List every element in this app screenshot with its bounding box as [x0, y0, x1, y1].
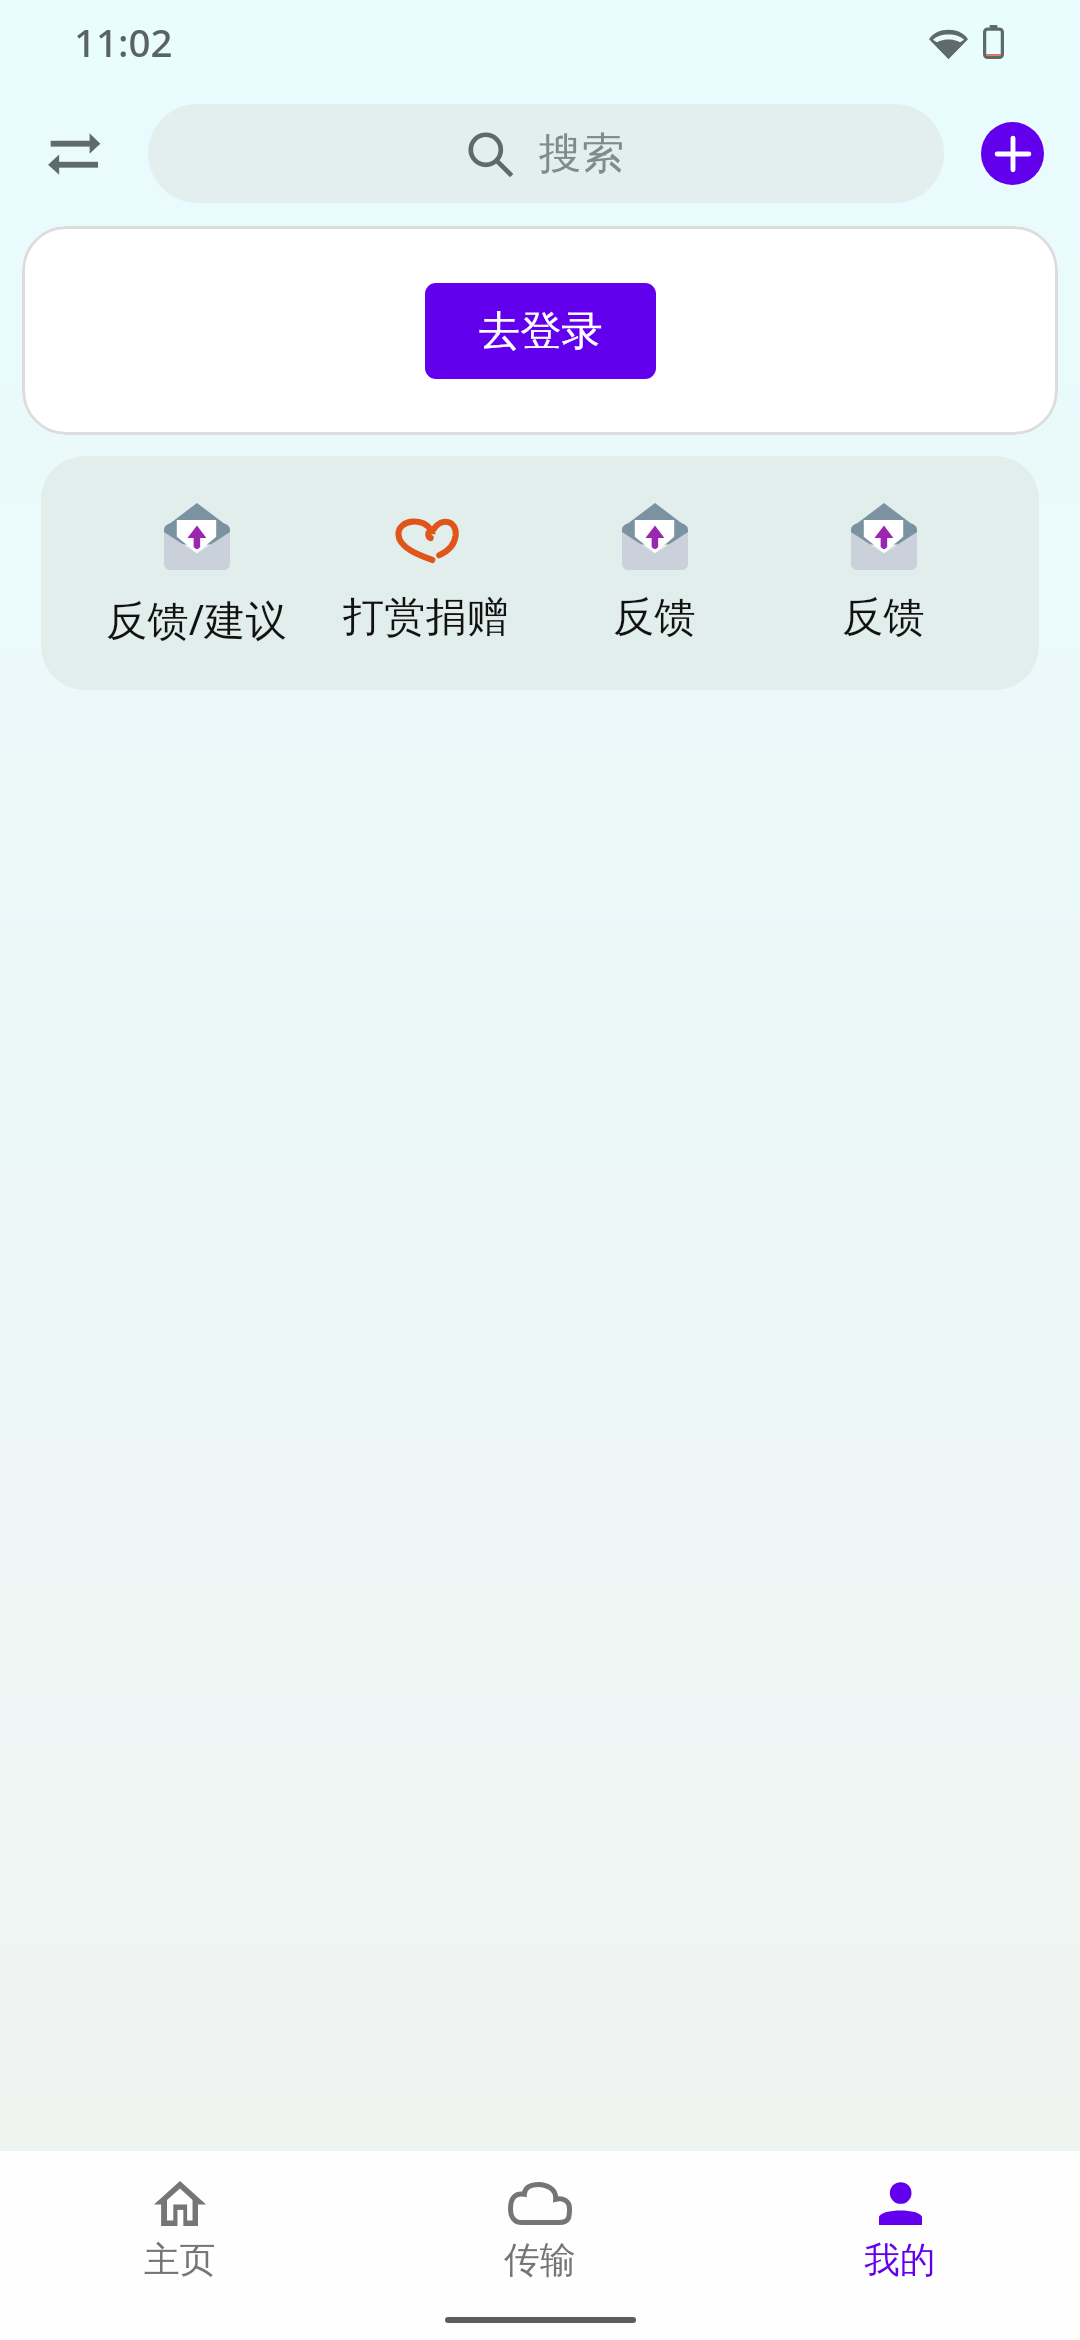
staticText: 主页: [144, 2238, 216, 2283]
staticText: 去登录: [479, 305, 603, 357]
staticText: 反馈: [842, 591, 925, 643]
staticText: 反馈: [613, 591, 696, 643]
staticText: 打赏捐赠: [343, 591, 508, 643]
button[interactable]: 去登录: [425, 283, 656, 379]
button[interactable]: 反馈: [769, 503, 998, 643]
button[interactable]: 传输: [360, 2180, 720, 2283]
button[interactable]: 主页: [0, 2180, 360, 2283]
staticText: 传输: [504, 2238, 576, 2283]
staticText: 搜索: [539, 127, 625, 181]
button[interactable]: 搜索: [148, 104, 944, 203]
button[interactable]: 反馈: [540, 503, 769, 643]
button[interactable]: 打赏捐赠: [311, 503, 540, 643]
button[interactable]: 反馈/建议: [82, 503, 311, 647]
button[interactable]: 我的: [720, 2180, 1080, 2283]
button[interactable]: Transfer: [21, 101, 126, 206]
staticText: 11:02: [74, 16, 173, 68]
button[interactable]: Add: [981, 122, 1044, 185]
staticText: 我的: [864, 2238, 936, 2283]
staticText: 反馈/建议: [106, 591, 287, 647]
